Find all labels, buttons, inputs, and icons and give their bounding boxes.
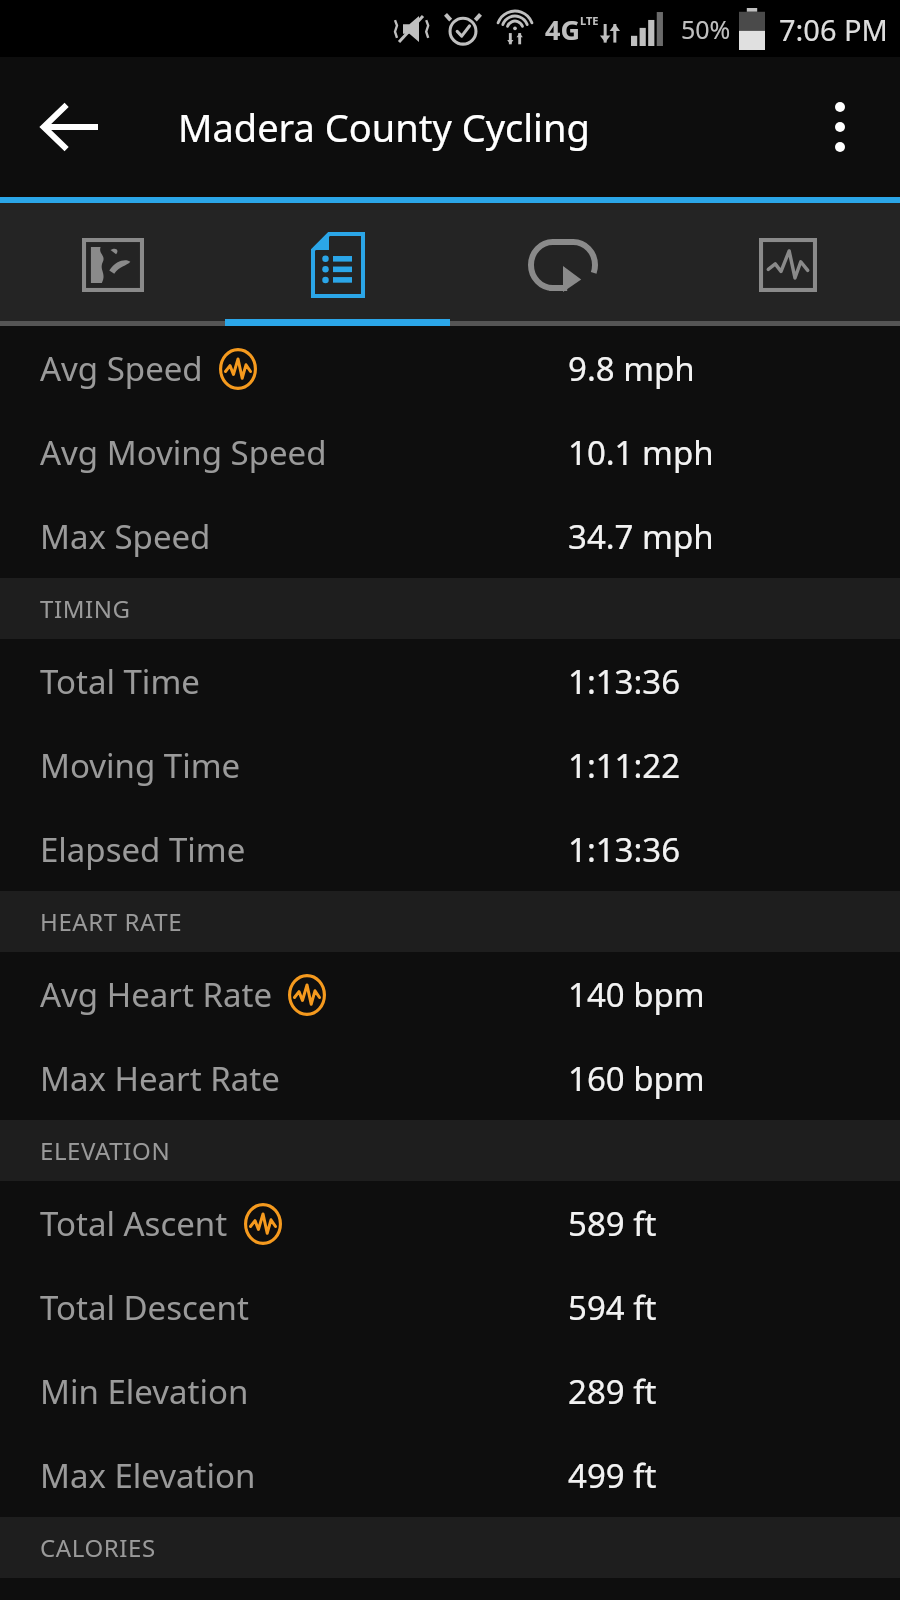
staticText: Max Elevation — [40, 1453, 256, 1498]
button[interactable]: Back — [22, 79, 118, 175]
staticText: 10.1 mph — [568, 430, 714, 475]
staticText: 589 ft — [568, 1201, 657, 1246]
staticText: TIMING — [40, 592, 131, 625]
button[interactable]: Avg Moving Speed — [0, 410, 900, 494]
button[interactable]: Max Elevation — [0, 1433, 900, 1517]
staticText: 7:06 PM — [779, 10, 888, 49]
button[interactable]: Total Time — [0, 639, 900, 723]
staticText: HEART RATE — [40, 905, 183, 938]
button[interactable]: Moving Time — [0, 723, 900, 807]
staticText: Total Ascent — [40, 1201, 228, 1246]
staticText: 1:13:36 — [568, 827, 681, 872]
staticText: 34.7 mph — [568, 514, 714, 559]
staticText: 9.8 mph — [568, 346, 695, 391]
staticText: 1:11:22 — [568, 743, 681, 788]
staticText: Max Speed — [40, 514, 211, 559]
staticText: LTE — [580, 13, 599, 28]
button[interactable]: Avg Speed — [0, 326, 900, 410]
staticText: 50% — [681, 12, 731, 46]
staticText: Total Time — [40, 659, 200, 704]
staticText: 594 ft — [568, 1285, 657, 1330]
button[interactable]: Max Speed — [0, 494, 900, 578]
staticText: Avg Heart Rate — [40, 972, 272, 1017]
staticText: Moving Time — [40, 743, 241, 788]
button[interactable]: Min Elevation — [0, 1349, 900, 1433]
staticText: 1:13:36 — [568, 659, 681, 704]
staticText: 160 bpm — [568, 1056, 705, 1101]
staticText: Avg Moving Speed — [40, 430, 327, 475]
staticText: Total Descent — [40, 1285, 249, 1330]
button[interactable]: Details — [225, 203, 450, 326]
staticText: Madera County Cycling — [178, 101, 590, 153]
button[interactable]: Charts — [675, 203, 900, 326]
staticText: Min Elevation — [40, 1369, 249, 1414]
staticText: ELEVATION — [40, 1134, 171, 1167]
staticText: Max Heart Rate — [40, 1056, 280, 1101]
button[interactable]: Elapsed Time — [0, 807, 900, 891]
staticText: 289 ft — [568, 1369, 657, 1414]
staticText: 140 bpm — [568, 972, 705, 1017]
button[interactable]: Total Ascent — [0, 1181, 900, 1265]
staticText: Avg Speed — [40, 346, 203, 391]
staticText: 4G — [545, 11, 580, 48]
button[interactable]: More options — [798, 85, 882, 169]
staticText: 499 ft — [568, 1453, 657, 1498]
button[interactable]: Laps — [450, 203, 675, 326]
button[interactable]: Map — [0, 203, 225, 326]
button[interactable]: Total Descent — [0, 1265, 900, 1349]
button[interactable]: Avg Heart Rate — [0, 952, 900, 1036]
staticText: CALORIES — [40, 1531, 156, 1564]
staticText: Elapsed Time — [40, 827, 246, 872]
button[interactable]: Max Heart Rate — [0, 1036, 900, 1120]
